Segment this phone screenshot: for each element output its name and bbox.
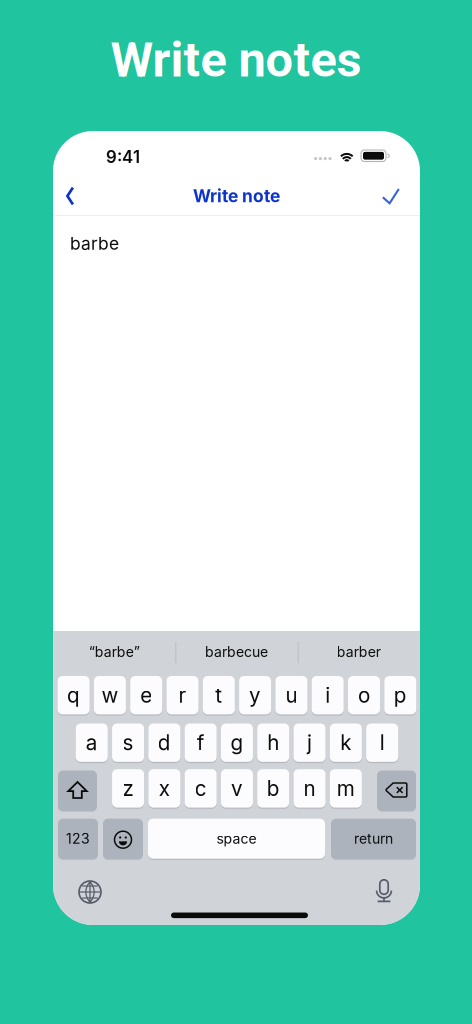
button[interactable]: i (312, 676, 344, 716)
staticText: Write notes (110, 31, 361, 88)
button[interactable]: l (366, 723, 398, 763)
button[interactable]: m (330, 769, 362, 809)
button[interactable]: z (112, 769, 144, 809)
staticText: t (215, 683, 222, 708)
button[interactable]: g (221, 723, 253, 763)
staticText: 9:41 (106, 147, 140, 167)
button[interactable]: p (384, 676, 416, 716)
button[interactable]: Emoji (103, 819, 143, 860)
staticText: m (337, 776, 355, 801)
button[interactable]: Save note (376, 181, 412, 211)
button[interactable]: c (185, 769, 217, 809)
button[interactable]: space (148, 819, 325, 860)
staticText: a (86, 730, 98, 755)
staticText: q (67, 683, 80, 708)
staticText: e (140, 683, 152, 708)
staticText: “barbe” (89, 643, 140, 660)
button[interactable]: Change keyboard (79, 881, 101, 903)
button[interactable]: f (185, 723, 217, 763)
button[interactable]: b (257, 769, 289, 809)
staticText: n (304, 776, 316, 801)
staticText: z (122, 776, 133, 801)
staticText: h (267, 730, 279, 755)
staticText: k (340, 730, 351, 755)
staticText: space (216, 830, 256, 847)
staticText: 123 (66, 830, 90, 847)
staticText: l (380, 730, 385, 755)
button[interactable]: x (148, 769, 180, 809)
staticText: j (307, 730, 312, 755)
staticText: o (358, 683, 370, 708)
button[interactable]: s (112, 723, 144, 763)
button[interactable]: v (221, 769, 253, 809)
button[interactable]: o (348, 676, 380, 716)
button[interactable]: t (203, 676, 235, 716)
staticText: i (325, 683, 330, 708)
button[interactable]: 123 (58, 819, 98, 860)
staticText: b (267, 776, 280, 801)
staticText: v (231, 776, 243, 801)
staticText: return (354, 830, 393, 847)
button[interactable]: a (76, 723, 108, 763)
staticText: w (101, 683, 118, 708)
staticText: Write note (193, 185, 280, 206)
button[interactable]: Back (55, 181, 85, 211)
staticText: d (158, 730, 171, 755)
staticText: c (195, 776, 207, 801)
staticText: y (249, 683, 261, 708)
button[interactable]: j (293, 723, 325, 763)
staticText: f (197, 730, 205, 755)
button[interactable]: k (330, 723, 362, 763)
button[interactable]: e (130, 676, 162, 716)
button[interactable]: Delete (377, 770, 416, 812)
staticText: barbecue (205, 643, 268, 660)
staticText: p (394, 683, 407, 708)
button[interactable]: h (257, 723, 289, 763)
button[interactable]: y (239, 676, 271, 716)
staticText: u (285, 683, 297, 708)
button[interactable]: Shift (58, 770, 97, 812)
button[interactable]: w (94, 676, 126, 716)
button[interactable]: return (331, 819, 416, 860)
staticText: barbe (70, 233, 119, 254)
staticText: x (159, 776, 170, 801)
staticText: s (122, 730, 133, 755)
button[interactable]: Dictate (373, 879, 395, 903)
button[interactable]: d (148, 723, 180, 763)
button[interactable]: u (275, 676, 307, 716)
button[interactable]: q (58, 676, 90, 716)
staticText: r (178, 683, 186, 708)
button[interactable]: r (166, 676, 198, 716)
staticText: barber (337, 643, 381, 660)
staticText: g (230, 730, 243, 755)
button[interactable]: n (294, 769, 326, 809)
